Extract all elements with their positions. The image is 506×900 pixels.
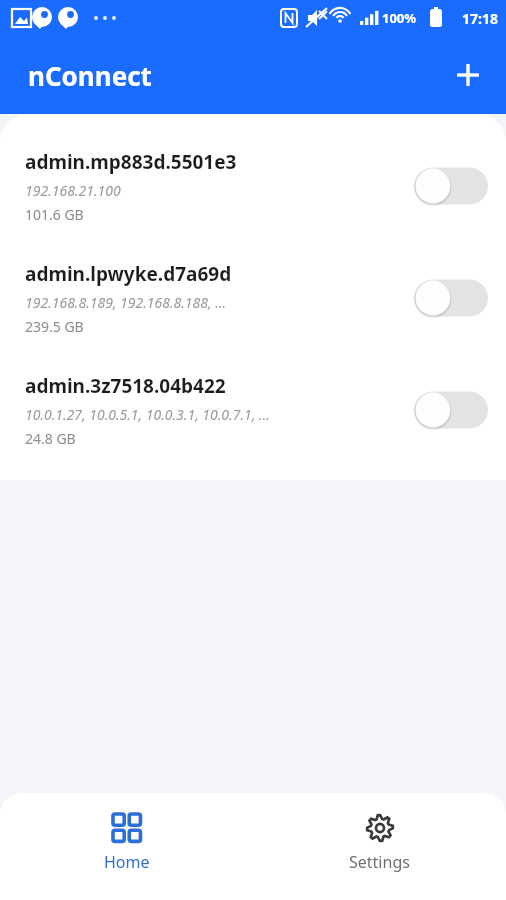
staticText: 101.6 GB: [25, 205, 84, 224]
staticText: admin.3z7518.04b422: [25, 373, 226, 399]
button[interactable]: admin.3z7518.04b422: [0, 354, 506, 466]
staticText: admin.mp883d.5501e3: [25, 149, 237, 175]
staticText: 24.8 GB: [25, 429, 76, 448]
button[interactable]: Connection toggle: [414, 387, 488, 433]
staticText: 192.168.8.189, 192.168.8.188, …: [25, 293, 226, 312]
staticText: 239.5 GB: [25, 317, 84, 336]
button[interactable]: Add connection: [444, 51, 492, 99]
button[interactable]: Connection toggle: [414, 163, 488, 209]
button[interactable]: Home: [0, 793, 253, 900]
staticText: 10.0.1.27, 10.0.5.1, 10.0.3.1, 10.0.7.1,…: [25, 405, 270, 424]
staticText: nConnect: [28, 58, 152, 93]
staticText: 17:18: [462, 9, 498, 28]
staticText: Home: [104, 851, 150, 873]
staticText: 100%: [382, 9, 417, 27]
button[interactable]: Connection toggle: [414, 275, 488, 321]
button[interactable]: admin.mp883d.5501e3: [0, 130, 506, 242]
button[interactable]: Settings: [253, 793, 506, 900]
staticText: 192.168.21.100: [25, 181, 121, 200]
staticText: Settings: [349, 851, 410, 873]
staticText: admin.lpwyke.d7a69d: [25, 261, 232, 287]
button[interactable]: admin.lpwyke.d7a69d: [0, 242, 506, 354]
